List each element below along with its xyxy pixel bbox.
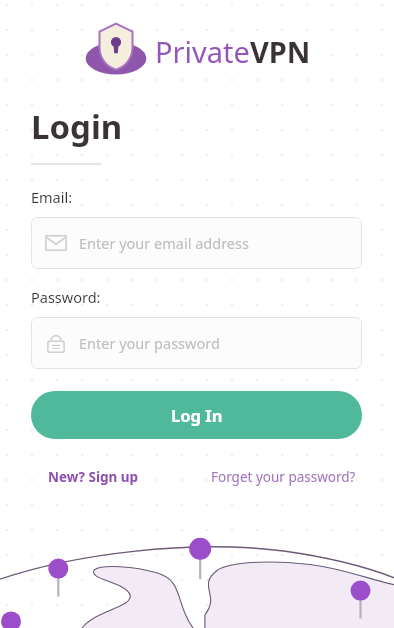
staticText: Password: xyxy=(31,287,101,307)
button[interactable]: Email icon xyxy=(31,217,362,269)
staticText: Email: xyxy=(31,187,73,207)
staticText: Forget your password? xyxy=(211,468,356,486)
button[interactable]: Password icon xyxy=(31,317,362,369)
staticText: VPN xyxy=(250,32,311,71)
staticText: Log In xyxy=(171,404,223,426)
staticText: New? Sign up xyxy=(48,468,139,486)
other: Email icon xyxy=(45,232,67,254)
staticText: Enter your password xyxy=(79,333,220,353)
button[interactable]: Log In xyxy=(31,391,362,439)
button[interactable]: New? Sign up xyxy=(46,465,141,489)
staticText: Private xyxy=(155,32,250,71)
button[interactable]: Forget your password? xyxy=(209,465,358,489)
staticText: Login xyxy=(31,104,123,149)
other: Password icon xyxy=(45,332,67,354)
staticText: Enter your email address xyxy=(79,233,249,253)
